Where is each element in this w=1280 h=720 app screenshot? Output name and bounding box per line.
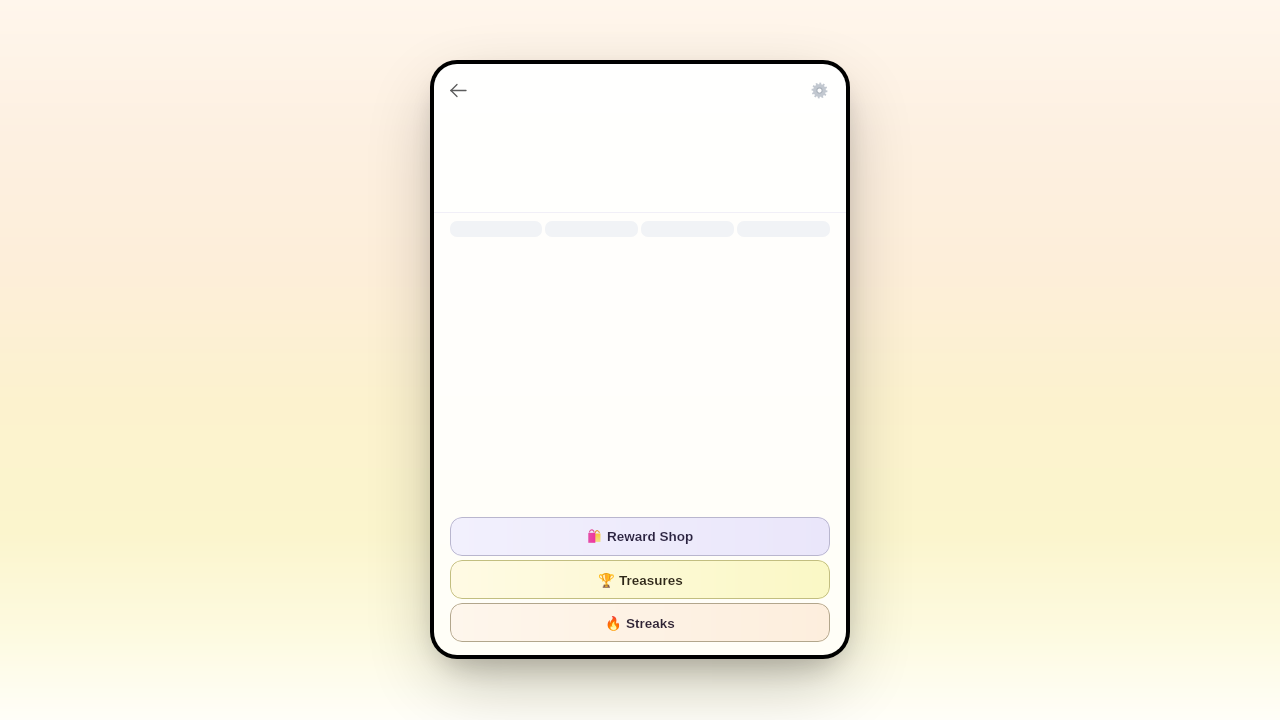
button[interactable]: Reward Shop	[450, 517, 830, 556]
staticText: Streaks	[626, 616, 675, 631]
staticText: 🏆	[598, 572, 615, 588]
button[interactable]: Settings	[803, 74, 835, 106]
button[interactable]: 🏆	[450, 560, 830, 599]
button[interactable]: 🔥	[450, 603, 830, 642]
button[interactable]: Back	[442, 74, 474, 106]
staticText: Reward Shop	[607, 529, 694, 544]
staticText: 🔥	[605, 615, 622, 631]
staticText: Treasures	[619, 573, 683, 588]
